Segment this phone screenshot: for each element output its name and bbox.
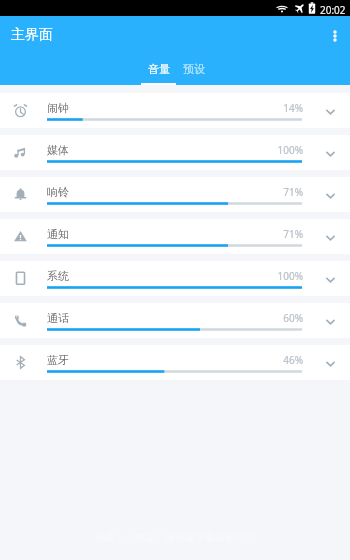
staticText: 14% — [263, 101, 303, 115]
button[interactable]: 系统 — [0, 261, 350, 296]
staticText: 预设 — [183, 62, 205, 76]
button[interactable]: 预设 — [176, 57, 211, 85]
staticText: 46% — [263, 353, 303, 367]
staticText: 20:02 — [320, 3, 346, 17]
staticText: 系统 — [47, 269, 69, 283]
staticText: 主界面 — [11, 26, 53, 44]
button[interactable]: 响铃 — [0, 177, 350, 212]
button[interactable]: 音量 — [141, 57, 176, 85]
button[interactable]: Expand 闹钟 — [316, 98, 344, 126]
button[interactable]: Expand 媒体 — [316, 140, 344, 168]
button[interactable]: 蓝牙 — [0, 345, 350, 380]
staticText: 媒体 — [47, 143, 69, 157]
button[interactable]: 通话 — [0, 303, 350, 338]
staticText: 通知 — [47, 227, 69, 241]
staticText: 通话 — [47, 311, 69, 325]
button[interactable]: 媒体 — [0, 135, 350, 170]
staticText: 60% — [263, 311, 303, 325]
staticText: 闹钟 — [47, 101, 69, 115]
staticText: 音量 — [148, 62, 170, 76]
button[interactable]: Expand 响铃 — [316, 182, 344, 210]
button[interactable]: More options — [322, 16, 350, 57]
button[interactable]: 通知 — [0, 219, 350, 254]
staticText: 71% — [263, 185, 303, 199]
staticText: 响铃 — [47, 185, 69, 199]
button[interactable]: Expand 通话 — [316, 308, 344, 336]
staticText: 71% — [263, 227, 303, 241]
staticText: 100% — [263, 143, 303, 157]
staticText: 100% — [263, 269, 303, 283]
button[interactable]: Expand 系统 — [316, 266, 344, 294]
button[interactable]: Expand 通知 — [316, 224, 344, 252]
staticText: 蓝牙 — [47, 353, 69, 367]
button[interactable]: 闹钟 — [0, 93, 350, 128]
button[interactable]: Expand 蓝牙 — [316, 350, 344, 378]
